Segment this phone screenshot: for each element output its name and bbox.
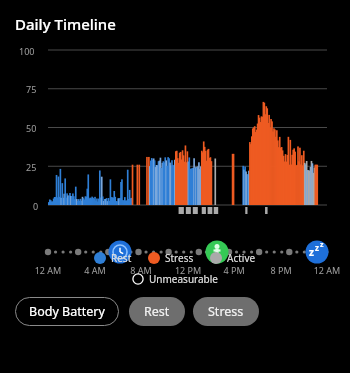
button[interactable]: Unmeasurable [130, 271, 220, 287]
button[interactable]: Rest [129, 297, 185, 326]
button[interactable]: Stress [146, 250, 196, 266]
staticText: Daily Timeline [15, 14, 116, 34]
staticText: 4 AM [78, 264, 112, 276]
button[interactable]: Rest [92, 250, 134, 266]
staticText: 4 PM [217, 264, 251, 276]
staticText: 75 [26, 83, 37, 95]
staticText: 100 [19, 45, 35, 57]
staticText: z [309, 245, 314, 259]
button[interactable]: Body Battery [15, 297, 119, 326]
staticText: Rest [111, 251, 132, 265]
staticText: Body Battery [29, 303, 105, 320]
staticText: Stress [165, 251, 194, 265]
staticText: 25 [26, 161, 37, 173]
button[interactable]: Stress [193, 297, 259, 326]
staticText: z [320, 240, 324, 250]
staticText: 50 [26, 122, 37, 134]
other: Sleep [309, 245, 314, 259]
staticText: 0 [33, 200, 39, 212]
staticText: 12 AM [31, 264, 65, 276]
staticText: Unmeasurable [149, 272, 218, 286]
staticText: 12 AM [310, 264, 344, 276]
staticText: 8 PM [264, 264, 298, 276]
staticText: Stress [208, 303, 244, 320]
staticText: z [315, 242, 319, 253]
staticText: 8 AM [124, 264, 158, 276]
staticText: Rest [144, 303, 170, 320]
staticText: Active [227, 251, 256, 265]
staticText: 12 PM [171, 264, 205, 276]
button[interactable]: Active [208, 250, 258, 266]
